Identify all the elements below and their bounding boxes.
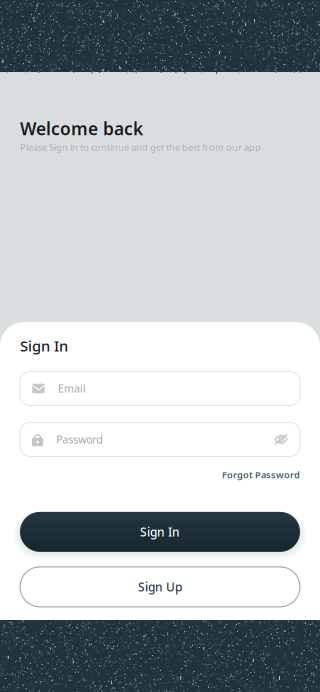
button[interactable]: Sign In: [0, 512, 320, 552]
staticText: Email: [58, 381, 86, 396]
staticText: Welcome back: [20, 117, 143, 140]
staticText: Sign Up: [138, 579, 182, 595]
button[interactable]: Forgot Password: [0, 456, 320, 481]
button[interactable]: Sign Up: [0, 567, 320, 607]
staticText: Password: [56, 432, 103, 447]
staticText: Sign In: [140, 524, 180, 540]
staticText: Sign In: [20, 336, 68, 355]
staticText: Forgot Password: [222, 468, 300, 481]
staticText: Please Sign in to continue and get the b…: [20, 141, 261, 153]
